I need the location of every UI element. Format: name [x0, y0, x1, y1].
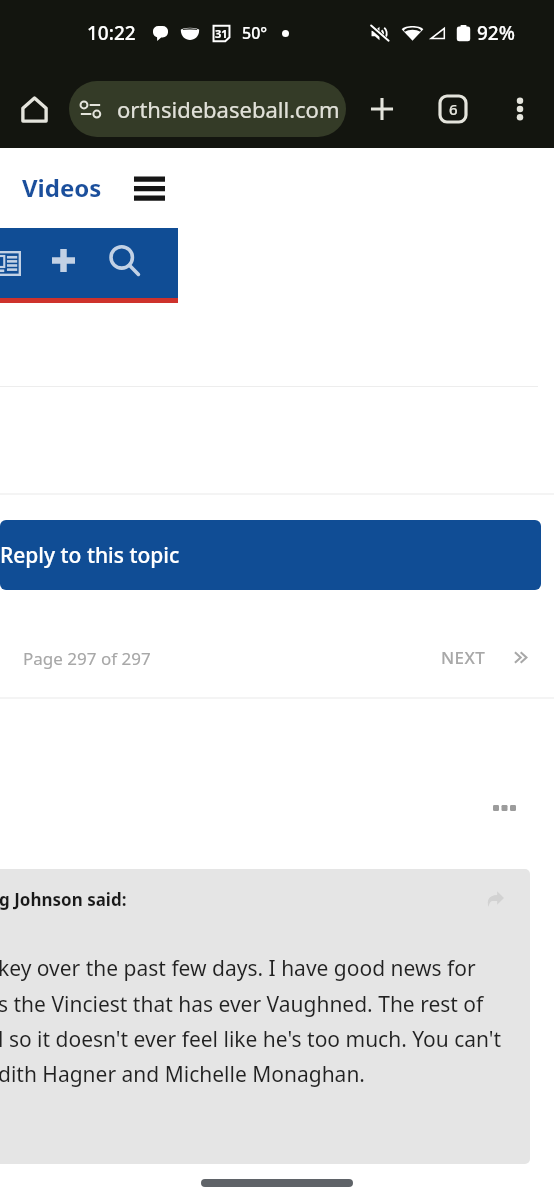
- staticText: 50°: [242, 22, 268, 44]
- button[interactable]: Home: [10, 85, 58, 133]
- staticText: Reply to this topic: [0, 541, 180, 570]
- staticText: NEXT: [441, 646, 486, 669]
- button[interactable]: Reply to this topic: [0, 520, 541, 590]
- staticText: 92%: [477, 20, 515, 46]
- staticText: g Johnson said:: [0, 888, 127, 911]
- button[interactable]: NEXT: [428, 633, 529, 681]
- staticText: orthsidebaseball.com: [117, 94, 340, 124]
- staticText: 6: [449, 99, 458, 119]
- button[interactable]: Articles: [0, 236, 34, 290]
- staticText: 10:22: [87, 20, 136, 46]
- button[interactable]: Videos: [22, 171, 102, 204]
- button[interactable]: orthsidebaseball.com: [69, 81, 346, 137]
- staticText: key over the past few days. I have good …: [0, 954, 502, 1088]
- button[interactable]: Switch tabs: [429, 85, 477, 133]
- button[interactable]: New post: [39, 236, 88, 285]
- button[interactable]: Menu: [127, 166, 171, 210]
- button[interactable]: Reply to quote: [477, 881, 513, 917]
- staticText: Page 297 of 297: [23, 647, 151, 670]
- button[interactable]: Search: [100, 236, 148, 284]
- button[interactable]: Post options: [482, 786, 526, 830]
- button[interactable]: More options: [496, 85, 544, 133]
- button[interactable]: New tab: [358, 85, 406, 133]
- staticText: Videos: [22, 171, 102, 204]
- staticText: 31: [215, 26, 228, 41]
